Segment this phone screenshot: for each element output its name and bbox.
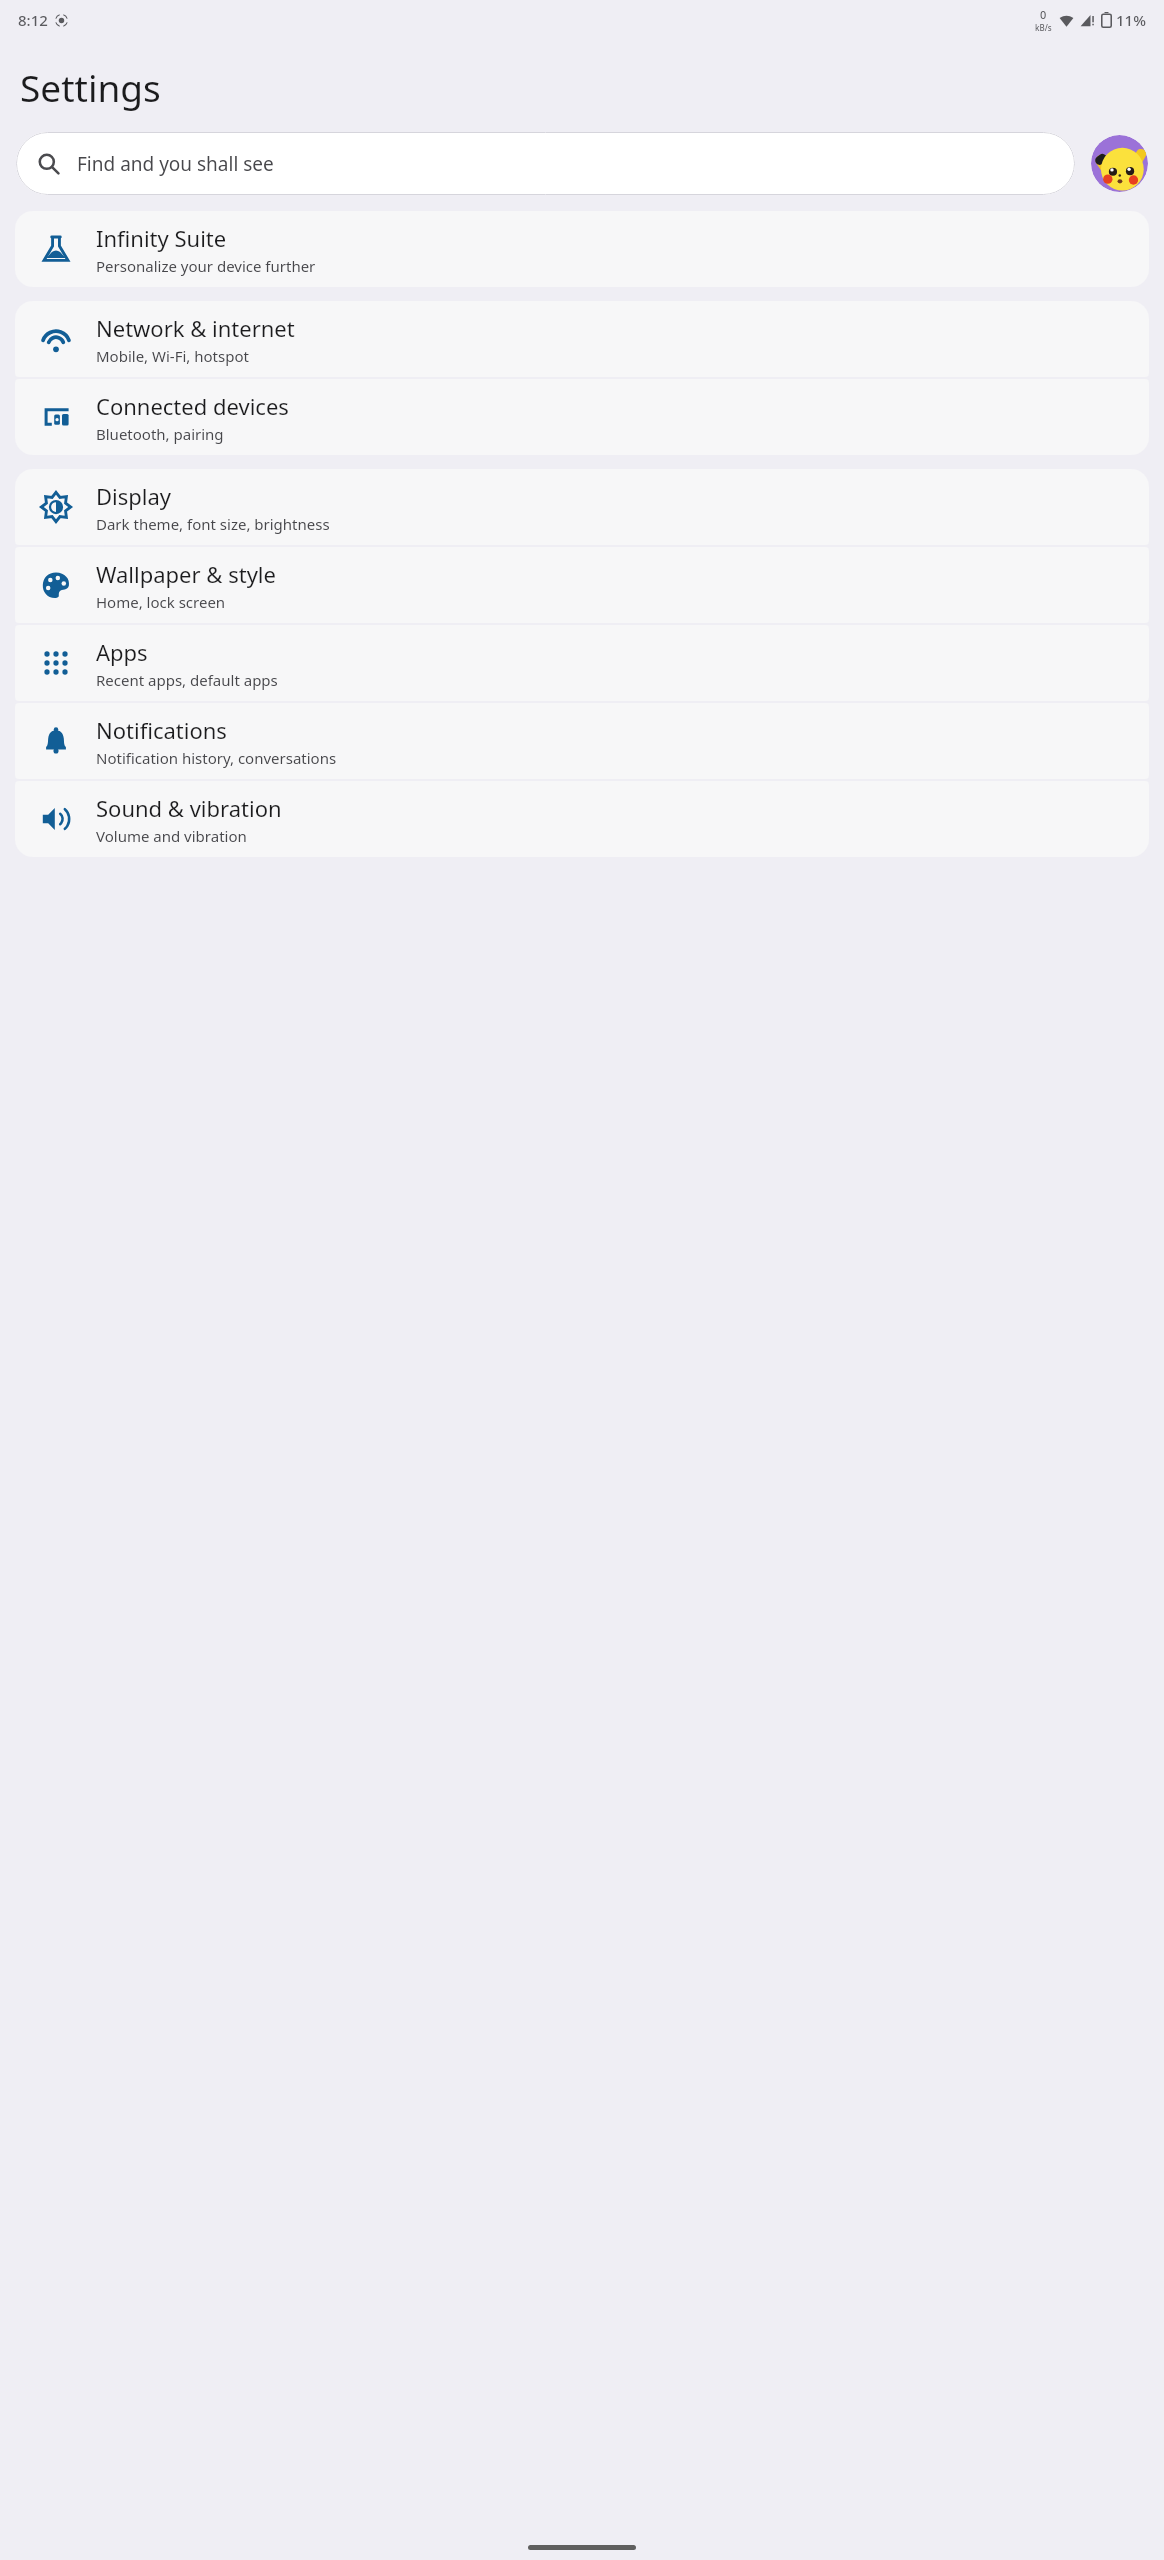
staticText: Notification history, conversations (96, 748, 337, 768)
staticText: Bluetooth, pairing (96, 424, 224, 444)
staticText: Notifications (96, 715, 227, 745)
staticText: Settings (20, 62, 161, 112)
button[interactable]: Account (1091, 135, 1148, 192)
staticText: Infinity Suite (96, 223, 227, 253)
staticText: Personalize your device further (96, 256, 316, 276)
staticText: Find and you shall see (77, 151, 274, 177)
button[interactable]: Find and you shall see (16, 132, 1075, 195)
staticText: Mobile, Wi-Fi, hotspot (96, 346, 249, 366)
staticText: 8:12 (18, 10, 48, 30)
button[interactable]: Display (15, 469, 1149, 545)
button[interactable]: Network & internet (15, 301, 1149, 377)
staticText: Home, lock screen (96, 592, 226, 612)
staticText: Apps (96, 637, 148, 667)
staticText: Dark theme, font size, brightness (96, 514, 330, 534)
staticText: 0 (1040, 7, 1047, 22)
staticText: Recent apps, default apps (96, 670, 278, 690)
button[interactable]: Infinity Suite (15, 211, 1149, 287)
staticText: Display (96, 481, 172, 511)
button[interactable]: Notifications (15, 703, 1149, 779)
staticText: Network & internet (96, 313, 295, 343)
staticText: Connected devices (96, 391, 289, 421)
staticText: 11% (1116, 10, 1146, 30)
staticText: Wallpaper & style (96, 559, 276, 589)
staticText: Sound & vibration (96, 793, 282, 823)
staticText: kB/s (1035, 22, 1052, 33)
button[interactable]: Apps (15, 625, 1149, 701)
staticText: Volume and vibration (96, 826, 247, 846)
button[interactable]: Wallpaper & style (15, 547, 1149, 623)
button[interactable]: Connected devices (15, 379, 1149, 455)
button[interactable]: Sound & vibration (15, 781, 1149, 857)
